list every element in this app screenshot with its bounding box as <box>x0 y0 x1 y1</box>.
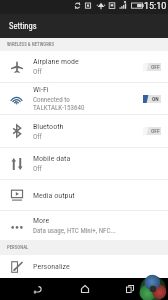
button[interactable]: Back <box>26 278 48 300</box>
staticText: Off <box>33 165 42 173</box>
staticText: Mobile data <box>33 154 71 163</box>
button[interactable]: Personalize <box>0 255 168 278</box>
staticText: PERSONAL <box>7 245 29 251</box>
staticText: ON <box>152 96 159 102</box>
staticText: More <box>33 216 50 225</box>
button[interactable]: More <box>0 211 168 240</box>
button[interactable]: Home <box>74 278 96 300</box>
staticText: Bluetooth <box>33 122 64 131</box>
staticText: Off <box>33 68 42 76</box>
button[interactable]: Bluetooth <box>0 115 168 147</box>
staticText: Personalize <box>33 262 70 271</box>
button[interactable]: Wi-Fi <box>0 83 168 114</box>
button[interactable]: Turn off <box>143 95 161 103</box>
button[interactable]: Turn on <box>143 63 161 71</box>
staticText: Airplane mode <box>33 57 79 66</box>
button[interactable]: Turn on <box>143 127 161 135</box>
staticText: Wi-Fi <box>33 85 49 94</box>
button[interactable]: Media output <box>0 180 168 210</box>
staticText: Connected to <box>33 96 70 104</box>
button[interactable]: Mobile data <box>0 148 168 179</box>
staticText: Media output <box>33 191 75 200</box>
staticText: OFF <box>151 64 160 70</box>
staticText: Data usage, HTC Mini+, NFC... <box>33 227 116 235</box>
staticText: TALKTALK-153640 <box>33 104 85 112</box>
button[interactable]: Airplane mode <box>0 51 168 82</box>
staticText: WIRELESS & NETWORKS <box>7 42 55 48</box>
button[interactable]: Recent apps <box>119 278 141 300</box>
staticText: 15:10 <box>144 1 167 12</box>
staticText: Off <box>33 133 42 141</box>
staticText: Settings <box>9 21 37 31</box>
staticText: OFF <box>151 128 160 134</box>
